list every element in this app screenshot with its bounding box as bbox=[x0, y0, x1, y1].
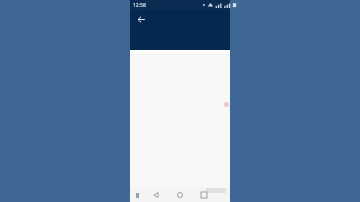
button[interactable]: Recents bbox=[192, 188, 216, 202]
button[interactable]: Back bbox=[144, 188, 168, 202]
button[interactable]: Back bbox=[132, 10, 150, 28]
button[interactable]: Home bbox=[168, 188, 192, 202]
button[interactable]: Menu bbox=[130, 188, 144, 202]
staticText: 12:58 bbox=[133, 2, 146, 9]
